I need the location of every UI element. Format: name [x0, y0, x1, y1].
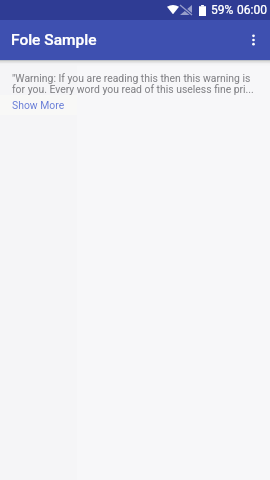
staticText: "Warning: If you are reading this then t… [12, 72, 254, 95]
staticText: Fole Sample [11, 31, 97, 49]
staticText: 59% [211, 3, 234, 17]
button[interactable]: "Warning: If you are reading this then t… [0, 72, 270, 95]
staticText: Show More [12, 99, 65, 111]
button[interactable]: More options [237, 24, 269, 56]
button[interactable]: Show More [0, 95, 77, 115]
staticText: 06:00 [237, 3, 267, 17]
